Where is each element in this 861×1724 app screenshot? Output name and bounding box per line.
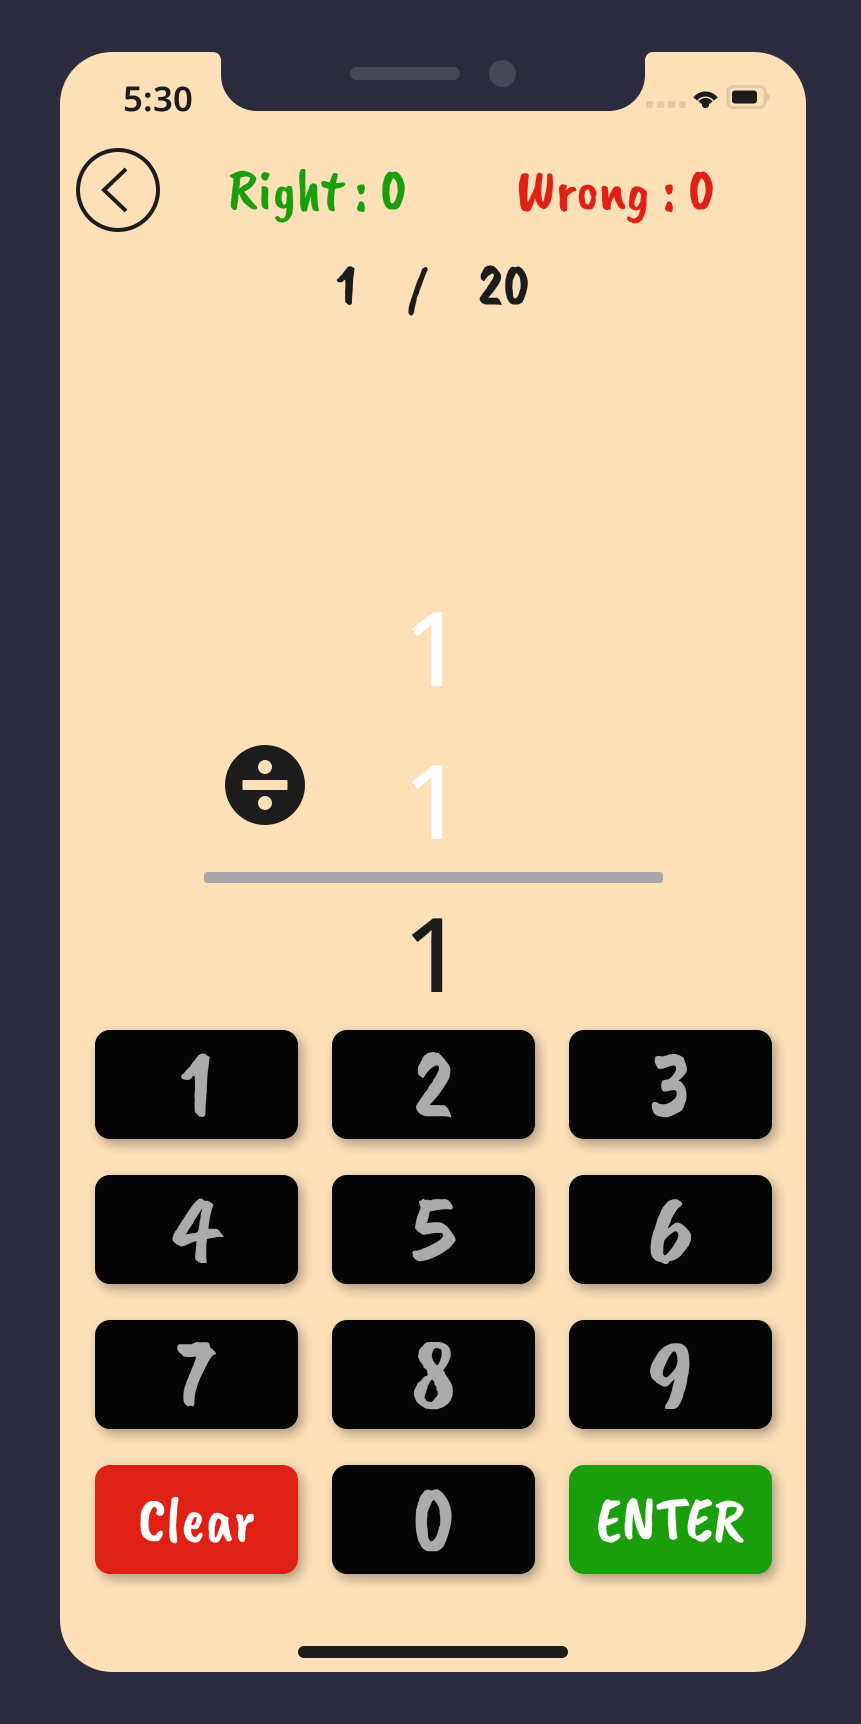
button[interactable]: 7 (95, 1320, 298, 1429)
staticText: 1 (180, 1024, 213, 1145)
staticText: 8 (411, 1314, 455, 1435)
button[interactable]: Clear (95, 1465, 298, 1574)
staticText: 1 (403, 577, 462, 715)
button[interactable]: ENTER (569, 1465, 772, 1574)
staticText: ENTER (596, 1479, 745, 1560)
staticText: 5 (412, 1169, 454, 1290)
staticText: 5:30 (123, 75, 193, 121)
staticText: Clear (138, 1480, 255, 1559)
staticText: 1 / 20 (336, 247, 530, 323)
button[interactable]: Back (76, 148, 160, 232)
staticText: 1 (403, 730, 462, 868)
button[interactable]: 4 (95, 1175, 298, 1284)
staticText: 9 (648, 1314, 692, 1435)
staticText: 1 (403, 883, 462, 1021)
staticText: Right : 0 (228, 152, 407, 228)
button[interactable]: 2 (332, 1030, 535, 1139)
button[interactable]: 8 (332, 1320, 535, 1429)
button[interactable]: 9 (569, 1320, 772, 1429)
button[interactable]: 5 (332, 1175, 535, 1284)
button[interactable]: 3 (569, 1030, 772, 1139)
staticText: 4 (174, 1169, 218, 1290)
staticText: Wrong : 0 (516, 152, 715, 228)
staticText: 2 (413, 1024, 453, 1145)
button[interactable]: 1 (95, 1030, 298, 1139)
staticText: 3 (650, 1024, 691, 1145)
staticText: 6 (648, 1169, 693, 1290)
button[interactable]: 6 (569, 1175, 772, 1284)
staticText: 7 (177, 1314, 215, 1435)
button[interactable]: 0 (332, 1465, 535, 1574)
staticText: 0 (412, 1459, 455, 1580)
